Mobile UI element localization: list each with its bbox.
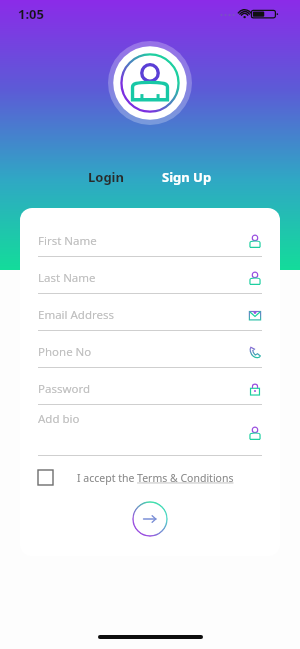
staticText: First Name [38, 233, 97, 249]
button[interactable]: Submit [132, 501, 168, 537]
button[interactable]: Accept terms checkbox [38, 470, 53, 485]
button[interactable]: Login [84, 165, 128, 189]
staticText: Sign Up [162, 168, 212, 186]
staticText: Add bio [38, 411, 80, 427]
staticText: Phone No [38, 344, 92, 360]
button[interactable]: Last Name [38, 263, 262, 294]
button[interactable]: Sign Up [158, 165, 216, 189]
staticText: Email Address [38, 307, 115, 323]
button[interactable]: First Name [38, 226, 262, 257]
button[interactable]: Add bio [38, 411, 262, 456]
staticText: Last Name [38, 270, 96, 286]
button[interactable]: I accept the Terms & Conditions [77, 471, 234, 485]
staticText: Login [88, 168, 124, 186]
staticText: I accept the Terms & Conditions [77, 471, 234, 485]
staticText: Password [38, 381, 91, 397]
button[interactable]: Email Address [38, 300, 262, 331]
staticText: 1:05 [18, 5, 44, 23]
button[interactable]: Password [38, 374, 262, 405]
button[interactable]: Phone No [38, 337, 262, 368]
